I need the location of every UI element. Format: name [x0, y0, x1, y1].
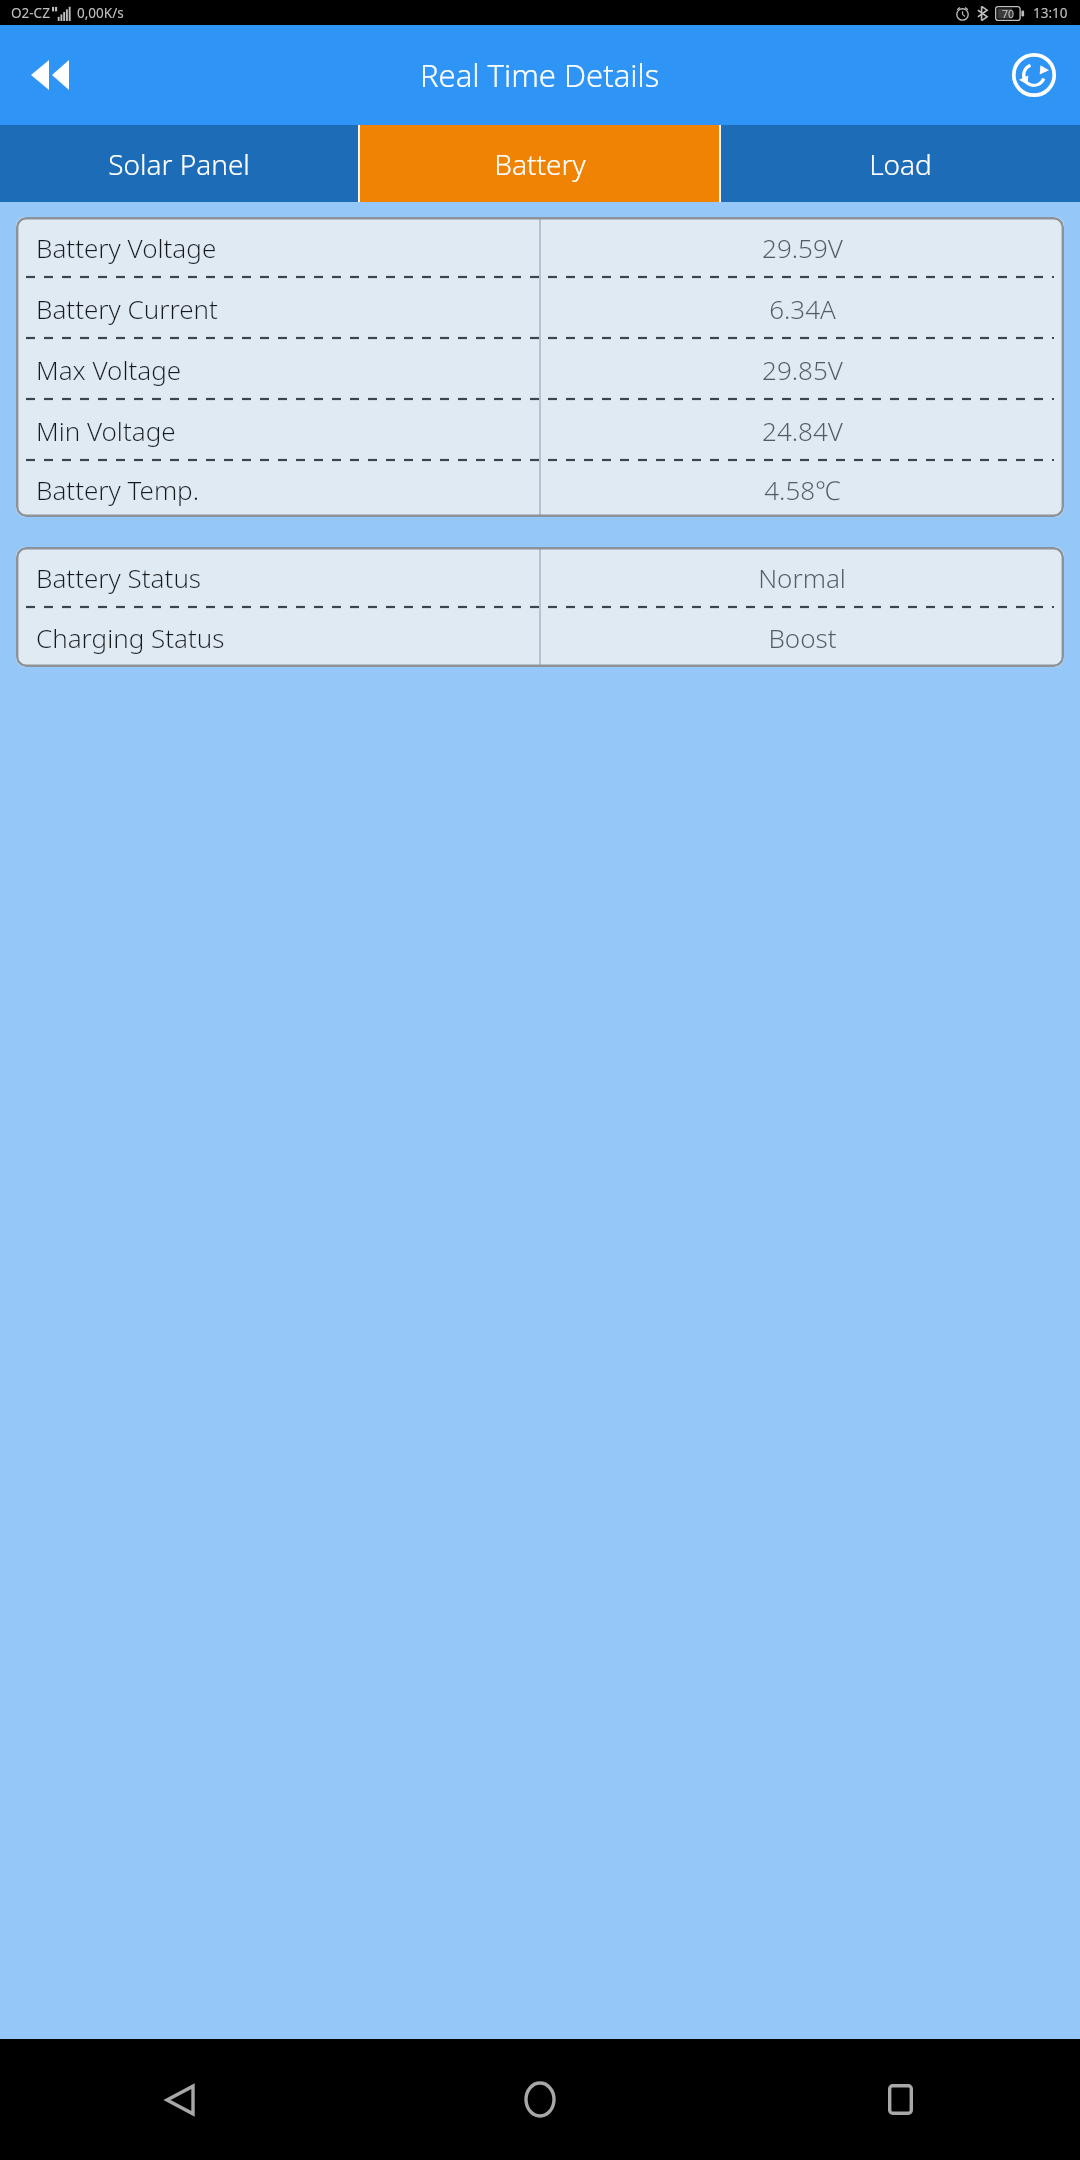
staticText: Boost [768, 620, 837, 655]
button[interactable]: Refresh [1007, 48, 1061, 102]
button[interactable]: Battery Current [16, 278, 1064, 338]
staticText: 6.34A [769, 291, 836, 326]
staticText: Battery Current [36, 291, 218, 326]
staticText: Battery Temp. [36, 472, 200, 507]
button[interactable]: Max Voltage [16, 339, 1064, 399]
staticText: Normal [758, 560, 846, 595]
staticText: 24.84V [762, 413, 843, 448]
staticText: Load [869, 145, 932, 183]
staticText: Battery Voltage [36, 230, 217, 265]
staticText: 29.85V [762, 352, 843, 387]
button[interactable]: Home [360, 2039, 720, 2160]
button[interactable]: Recent apps [720, 2039, 1080, 2160]
staticText: Battery [494, 145, 586, 183]
button[interactable]: Battery Voltage [16, 217, 1064, 277]
button[interactable]: Battery [360, 125, 719, 202]
button[interactable]: Back [22, 47, 78, 103]
staticText: Min Voltage [36, 413, 176, 448]
staticText: Battery Status [36, 560, 202, 595]
staticText: 0,00K/s [77, 4, 124, 22]
staticText: Real Time Details [420, 54, 660, 96]
staticText: 13:10 [1033, 4, 1068, 22]
button[interactable]: Load [721, 125, 1080, 202]
button[interactable]: Min Voltage [16, 400, 1064, 460]
staticText: 4.58℃ [764, 472, 841, 507]
button[interactable]: Battery Temp. [16, 461, 1064, 517]
button[interactable]: Battery Status [16, 547, 1064, 607]
button[interactable]: Charging Status [16, 608, 1064, 667]
staticText: 29.59V [762, 230, 843, 265]
staticText: Charging Status [36, 620, 225, 655]
staticText: Solar Panel [108, 145, 250, 183]
staticText: 70 [1002, 7, 1015, 21]
button[interactable]: Solar Panel [0, 125, 358, 202]
staticText: O2-CZ [11, 4, 50, 22]
staticText: Max Voltage [36, 352, 182, 387]
button[interactable]: Back [0, 2039, 360, 2160]
